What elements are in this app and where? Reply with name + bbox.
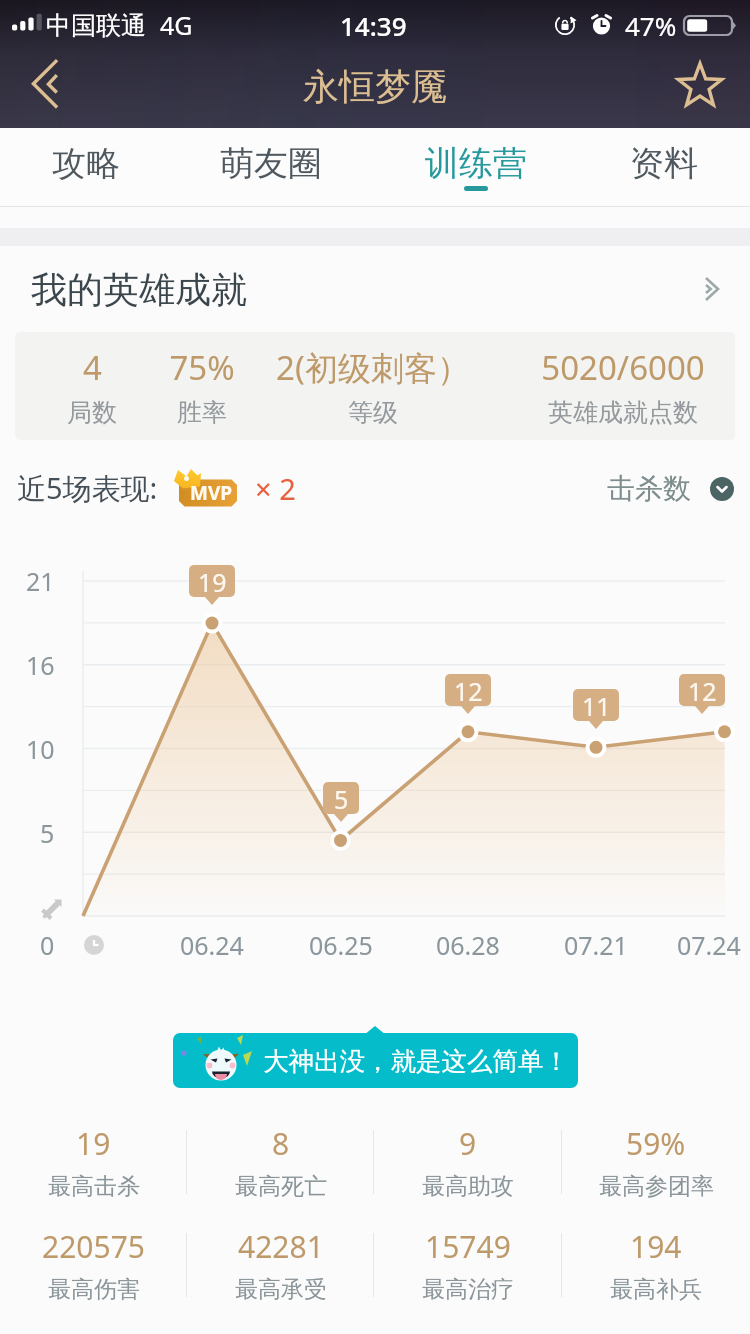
staticText: 0 (40, 928, 55, 962)
staticText: × 2 (255, 469, 296, 508)
staticText: 攻略 (52, 142, 120, 185)
staticText: 等级 (348, 397, 398, 428)
staticText: 19 (198, 565, 227, 597)
staticText: 9 (459, 1123, 477, 1164)
staticText: 194 (630, 1226, 682, 1267)
staticText: 英雄成就点数 (548, 397, 698, 428)
staticText: 12 (688, 674, 717, 706)
button[interactable]: 42281 (187, 1213, 374, 1316)
staticText: 训练营 (425, 142, 527, 185)
button[interactable]: Back (0, 50, 76, 126)
staticText: 14:39 (340, 8, 407, 43)
button[interactable]: 资料 (582, 128, 746, 206)
staticText: 最高补兵 (610, 1275, 702, 1304)
staticText: 19 (76, 1123, 111, 1164)
button[interactable]: 攻略 (0, 128, 172, 206)
button[interactable]: 15749 (374, 1213, 562, 1316)
staticText: 击杀数 (607, 471, 691, 506)
staticText: 最高死亡 (235, 1172, 327, 1201)
staticText: 10 (26, 732, 55, 766)
staticText: 最高伤害 (48, 1275, 140, 1304)
staticText: 4G (160, 8, 193, 42)
button[interactable]: 大神出没，就是这么简单！ (173, 1033, 578, 1088)
staticText: 最高助攻 (422, 1172, 514, 1201)
button[interactable]: 194 (562, 1213, 750, 1316)
staticText: 中国联通 (46, 10, 146, 41)
staticText: 59% (626, 1123, 686, 1164)
staticText: 资料 (630, 142, 698, 185)
staticText: 永恒梦魇 (303, 64, 447, 109)
button[interactable]: 59% (562, 1110, 750, 1213)
staticText: 75% (169, 345, 235, 390)
staticText: 12 (454, 674, 483, 706)
button[interactable]: 9 (374, 1110, 562, 1213)
staticText: 4 (83, 345, 102, 390)
button[interactable]: 19 (0, 1110, 187, 1213)
staticText: 5 (334, 782, 349, 814)
staticText: 2(初级刺客） (276, 345, 470, 390)
staticText: 5020/6000 (541, 345, 705, 390)
staticText: 最高承受 (235, 1275, 327, 1304)
staticText: 5 (40, 816, 55, 850)
staticText: 8 (272, 1123, 290, 1164)
staticText: 15749 (425, 1226, 511, 1267)
staticText: 06.24 (180, 928, 244, 962)
staticText: 06.25 (309, 928, 373, 962)
button[interactable]: 220575 (0, 1213, 187, 1316)
staticText: 我的英雄成就 (31, 267, 247, 312)
button[interactable]: 8 (187, 1110, 374, 1213)
staticText: 近5场表现: (17, 468, 158, 508)
staticText: 06.28 (436, 928, 500, 962)
staticText: 大神出没，就是这么简单！ (263, 1045, 569, 1077)
staticText: MVP (190, 480, 233, 506)
staticText: 21 (26, 564, 55, 598)
staticText: 11 (582, 689, 611, 721)
staticText: 局数 (67, 397, 117, 428)
staticText: 220575 (42, 1226, 145, 1267)
staticText: 16 (26, 648, 55, 682)
button[interactable]: Select metric 击杀数 (607, 471, 734, 506)
staticText: 07.24 (677, 928, 741, 962)
staticText: 胜率 (177, 397, 227, 428)
staticText: 萌友圈 (220, 142, 322, 185)
button[interactable]: 萌友圈 (172, 128, 370, 206)
staticText: 07.21 (564, 928, 628, 962)
staticText: 最高击杀 (48, 1172, 140, 1201)
staticText: 最高治疗 (422, 1275, 514, 1304)
button[interactable]: 训练营 (370, 128, 582, 206)
staticText: 42281 (238, 1226, 324, 1267)
staticText: 最高参团率 (599, 1172, 714, 1201)
button[interactable]: Favorite (662, 50, 738, 126)
button[interactable]: 我的英雄成就 (0, 246, 750, 332)
staticText: 47% (625, 8, 677, 43)
